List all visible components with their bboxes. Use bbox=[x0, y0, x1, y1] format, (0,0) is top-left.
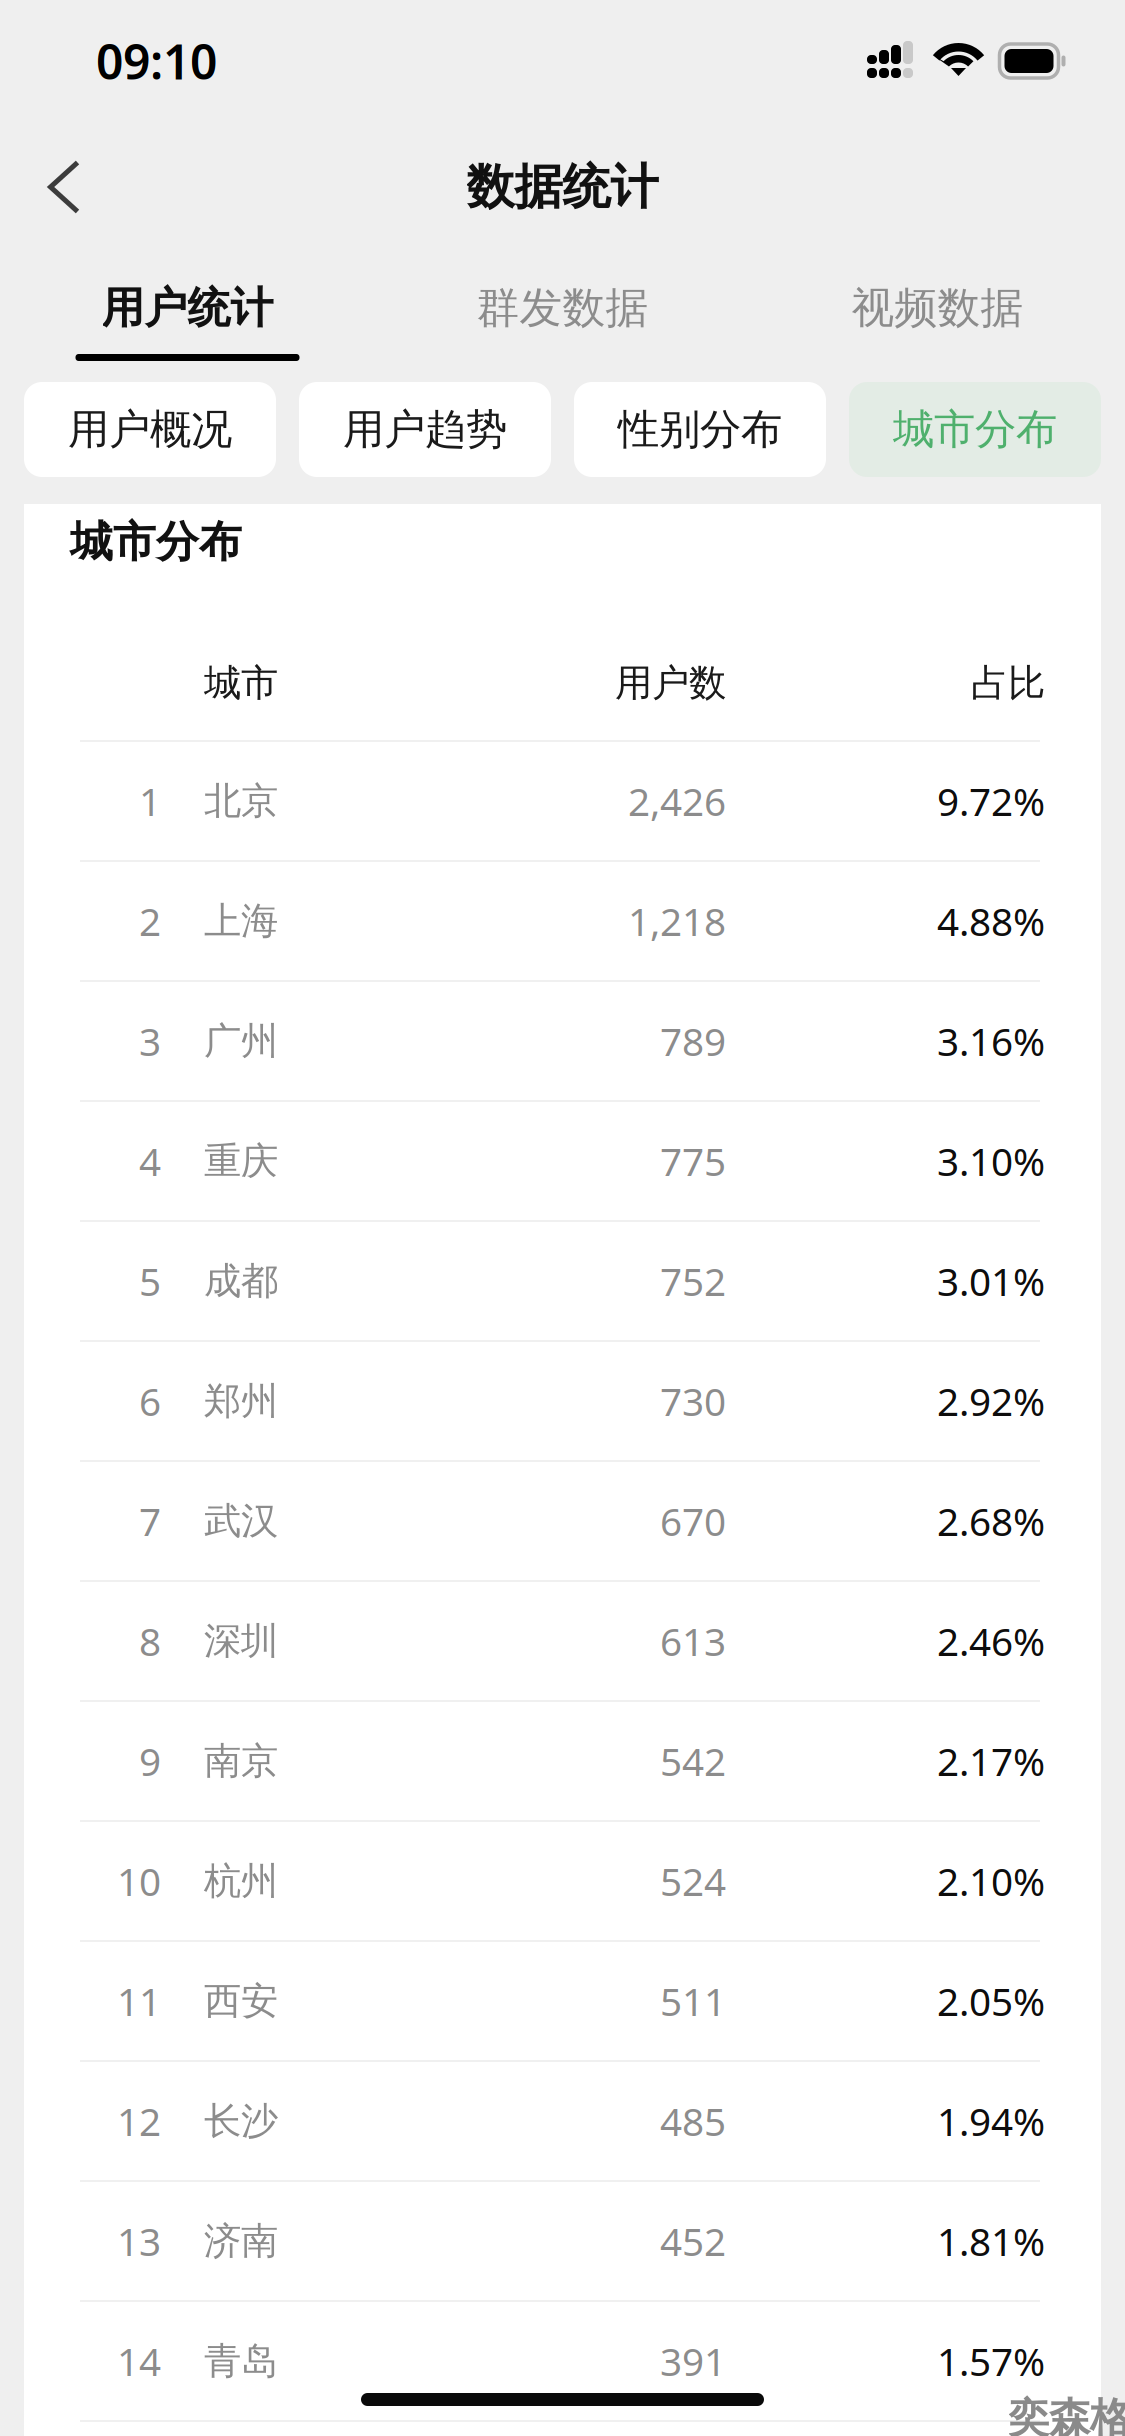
staticText: 广州 bbox=[204, 1018, 278, 1064]
staticText: 613 bbox=[660, 1615, 726, 1667]
staticText: 730 bbox=[660, 1375, 726, 1427]
staticText: 深圳 bbox=[204, 1618, 278, 1664]
staticText: 用户数 bbox=[615, 660, 726, 706]
staticText: 10 bbox=[117, 1855, 161, 1907]
staticText: 性别分布 bbox=[618, 404, 782, 455]
staticText: 1.94% bbox=[937, 2095, 1045, 2147]
staticText: 济南 bbox=[204, 2218, 278, 2264]
button[interactable]: 7 bbox=[24, 1460, 1101, 1580]
staticText: 2.68% bbox=[937, 1495, 1045, 1547]
staticText: 542 bbox=[660, 1735, 726, 1787]
staticText: 3.01% bbox=[937, 1255, 1045, 1307]
button[interactable]: 10 bbox=[24, 1820, 1101, 1940]
staticText: 670 bbox=[660, 1495, 726, 1547]
button[interactable]: 用户趋势 bbox=[299, 382, 551, 477]
staticText: 1.57% bbox=[937, 2335, 1045, 2387]
button[interactable]: 3 bbox=[24, 980, 1101, 1100]
button[interactable]: 1 bbox=[24, 740, 1101, 860]
staticText: 3.10% bbox=[937, 1135, 1045, 1187]
staticText: 长沙 bbox=[204, 2098, 278, 2144]
staticText: 4 bbox=[139, 1135, 161, 1187]
staticText: 485 bbox=[660, 2095, 726, 2147]
staticText: 14 bbox=[117, 2335, 161, 2387]
staticText: 7 bbox=[139, 1495, 161, 1547]
staticText: 9 bbox=[139, 1735, 161, 1787]
staticText: 视频数据 bbox=[851, 282, 1023, 334]
staticText: 12 bbox=[117, 2095, 161, 2147]
staticText: 杭州 bbox=[204, 1858, 278, 1904]
staticText: 391 bbox=[660, 2335, 726, 2387]
staticText: 用户概况 bbox=[68, 404, 232, 455]
staticText: 数据统计 bbox=[466, 157, 658, 216]
button[interactable]: 8 bbox=[24, 1580, 1101, 1700]
button[interactable]: 5 bbox=[24, 1220, 1101, 1340]
staticText: 3 bbox=[139, 1015, 161, 1067]
staticText: 6 bbox=[139, 1375, 161, 1427]
staticText: 3.16% bbox=[937, 1015, 1045, 1067]
staticText: 8 bbox=[139, 1615, 161, 1667]
staticText: 青岛 bbox=[204, 2338, 278, 2384]
staticText: 用户趋势 bbox=[343, 404, 507, 455]
staticText: 南京 bbox=[204, 1738, 278, 1784]
staticText: 13 bbox=[117, 2215, 161, 2267]
staticText: 城市分布 bbox=[893, 404, 1057, 455]
staticText: 524 bbox=[660, 1855, 726, 1907]
staticText: 群发数据 bbox=[476, 282, 648, 334]
staticText: 775 bbox=[660, 1135, 726, 1187]
staticText: 城市 bbox=[204, 660, 278, 706]
staticText: 1 bbox=[139, 775, 161, 827]
staticText: 4.88% bbox=[937, 895, 1045, 947]
button[interactable]: 9 bbox=[24, 1700, 1101, 1820]
button[interactable]: 性别分布 bbox=[574, 382, 826, 477]
staticText: 奕森格 bbox=[1008, 2393, 1125, 2436]
staticText: 上海 bbox=[204, 898, 278, 944]
button[interactable]: 13 bbox=[24, 2180, 1101, 2300]
staticText: 5 bbox=[139, 1255, 161, 1307]
staticText: 重庆 bbox=[204, 1138, 278, 1184]
staticText: 2 bbox=[139, 895, 161, 947]
staticText: 511 bbox=[660, 1975, 726, 2027]
button[interactable]: 城市分布 bbox=[849, 382, 1101, 477]
staticText: 2.10% bbox=[937, 1855, 1045, 1907]
button[interactable]: 14 bbox=[24, 2300, 1101, 2420]
staticText: 452 bbox=[660, 2215, 726, 2267]
staticText: 用户统计 bbox=[101, 282, 273, 334]
staticText: 占比 bbox=[971, 660, 1045, 706]
button[interactable]: 群发数据 bbox=[375, 246, 750, 382]
staticText: 9.72% bbox=[937, 775, 1045, 827]
staticText: 2.92% bbox=[937, 1375, 1045, 1427]
staticText: 789 bbox=[660, 1015, 726, 1067]
staticText: 2.46% bbox=[937, 1615, 1045, 1667]
staticText: 北京 bbox=[204, 778, 278, 824]
staticText: 11 bbox=[117, 1975, 161, 2027]
button[interactable]: 2 bbox=[24, 860, 1101, 980]
button[interactable]: 用户概况 bbox=[24, 382, 276, 477]
staticText: 2.17% bbox=[937, 1735, 1045, 1787]
staticText: 西安 bbox=[204, 1978, 278, 2024]
staticText: 成都 bbox=[204, 1258, 278, 1304]
staticText: 城市分布 bbox=[70, 516, 242, 568]
staticText: 2.05% bbox=[937, 1975, 1045, 2027]
button[interactable]: 6 bbox=[24, 1340, 1101, 1460]
staticText: 752 bbox=[660, 1255, 726, 1307]
button[interactable]: 11 bbox=[24, 1940, 1101, 2060]
staticText: 2,426 bbox=[628, 775, 726, 827]
staticText: 09:10 bbox=[96, 29, 217, 93]
button[interactable]: 返回 bbox=[0, 130, 128, 244]
button[interactable]: 4 bbox=[24, 1100, 1101, 1220]
button[interactable]: 视频数据 bbox=[750, 246, 1125, 382]
staticText: 武汉 bbox=[204, 1498, 278, 1544]
button[interactable]: 12 bbox=[24, 2060, 1101, 2180]
staticText: 1.81% bbox=[937, 2215, 1045, 2267]
staticText: 1,218 bbox=[628, 895, 726, 947]
staticText: 郑州 bbox=[204, 1378, 278, 1424]
button[interactable]: 用户统计 bbox=[0, 246, 375, 382]
